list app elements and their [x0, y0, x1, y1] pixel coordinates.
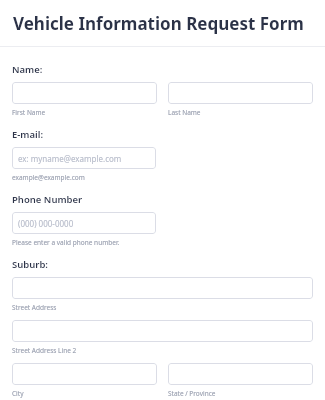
- button[interactable]: Phone Number field: [12, 212, 156, 234]
- staticText: City: [12, 389, 24, 398]
- staticText: First Name: [12, 108, 46, 117]
- staticText: Last Name: [168, 108, 201, 117]
- button[interactable]: First Name field: [12, 82, 157, 104]
- staticText: Phone Number: [12, 193, 83, 206]
- button[interactable]: City field: [12, 363, 157, 385]
- button[interactable]: Last Name field: [168, 82, 313, 104]
- staticText: Street Address Line 2: [12, 346, 77, 355]
- staticText: Street Address: [12, 303, 57, 312]
- staticText: Vehicle Information Request Form: [13, 12, 304, 35]
- staticText: Suburb:: [12, 258, 48, 271]
- staticText: example@example.com: [12, 173, 85, 182]
- staticText: ex: myname@example.com: [18, 153, 122, 164]
- button[interactable]: E-mail field: [12, 147, 156, 169]
- staticText: E-mail:: [12, 128, 44, 141]
- staticText: Please enter a valid phone number.: [12, 238, 120, 247]
- button[interactable]: State or Province field: [168, 363, 313, 385]
- staticText: Name:: [12, 63, 43, 76]
- button[interactable]: Street Address field: [12, 277, 313, 299]
- staticText: (000) 000-0000: [18, 218, 74, 229]
- button[interactable]: Street Address Line 2 field: [12, 320, 313, 342]
- staticText: State / Province: [168, 389, 216, 398]
